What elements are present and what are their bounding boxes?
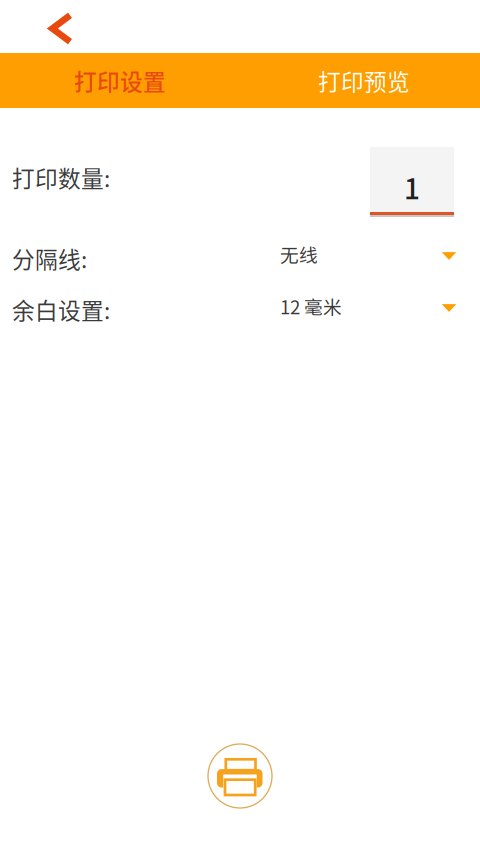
staticText: 12 毫米 [280, 292, 342, 319]
staticText: 1 [404, 167, 420, 207]
button[interactable]: 余白设置 12 毫米 [280, 293, 465, 319]
staticText: 分隔线: [12, 242, 87, 275]
staticText: 无线 [280, 240, 318, 267]
staticText: 打印预览 [318, 64, 410, 97]
button[interactable]: 打印设置 [0, 53, 240, 108]
staticText: 打印数量: [12, 161, 110, 194]
button[interactable]: Print [202, 738, 278, 814]
staticText: 余白设置: [12, 293, 110, 326]
button[interactable]: 打印预览 [240, 53, 480, 108]
button[interactable]: 分隔线 无线 [280, 241, 465, 267]
button[interactable]: Print quantity [370, 147, 454, 217]
button[interactable]: Back [31, 2, 91, 55]
staticText: 打印设置 [74, 64, 166, 97]
